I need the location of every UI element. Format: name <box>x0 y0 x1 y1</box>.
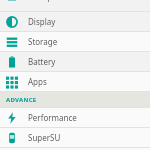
button[interactable]: Battery <box>0 52 150 71</box>
staticText: Storage <box>28 36 58 47</box>
button[interactable]: Storage <box>0 32 150 51</box>
staticText: Apps <box>28 76 47 87</box>
button[interactable]: Performance <box>0 108 150 127</box>
staticText: User profiles <box>28 0 76 2</box>
other: Storage <box>6 36 18 48</box>
button[interactable]: Display <box>0 12 150 31</box>
button[interactable]: Apps <box>0 72 150 91</box>
other: Display <box>6 16 18 28</box>
button[interactable]: User profiles <box>0 0 150 11</box>
staticText: SuperSU <box>28 132 61 143</box>
other: SuperSU <box>6 132 18 144</box>
other: Apps <box>6 76 18 88</box>
button[interactable]: SuperSU <box>0 128 150 147</box>
staticText: Display <box>28 16 56 27</box>
staticText: ADVANCE <box>6 96 37 104</box>
staticText: Battery <box>28 56 56 67</box>
other: User profiles <box>6 0 18 2</box>
other: Battery <box>6 56 18 68</box>
staticText: Performance <box>28 112 77 123</box>
other: Performance <box>6 112 18 124</box>
